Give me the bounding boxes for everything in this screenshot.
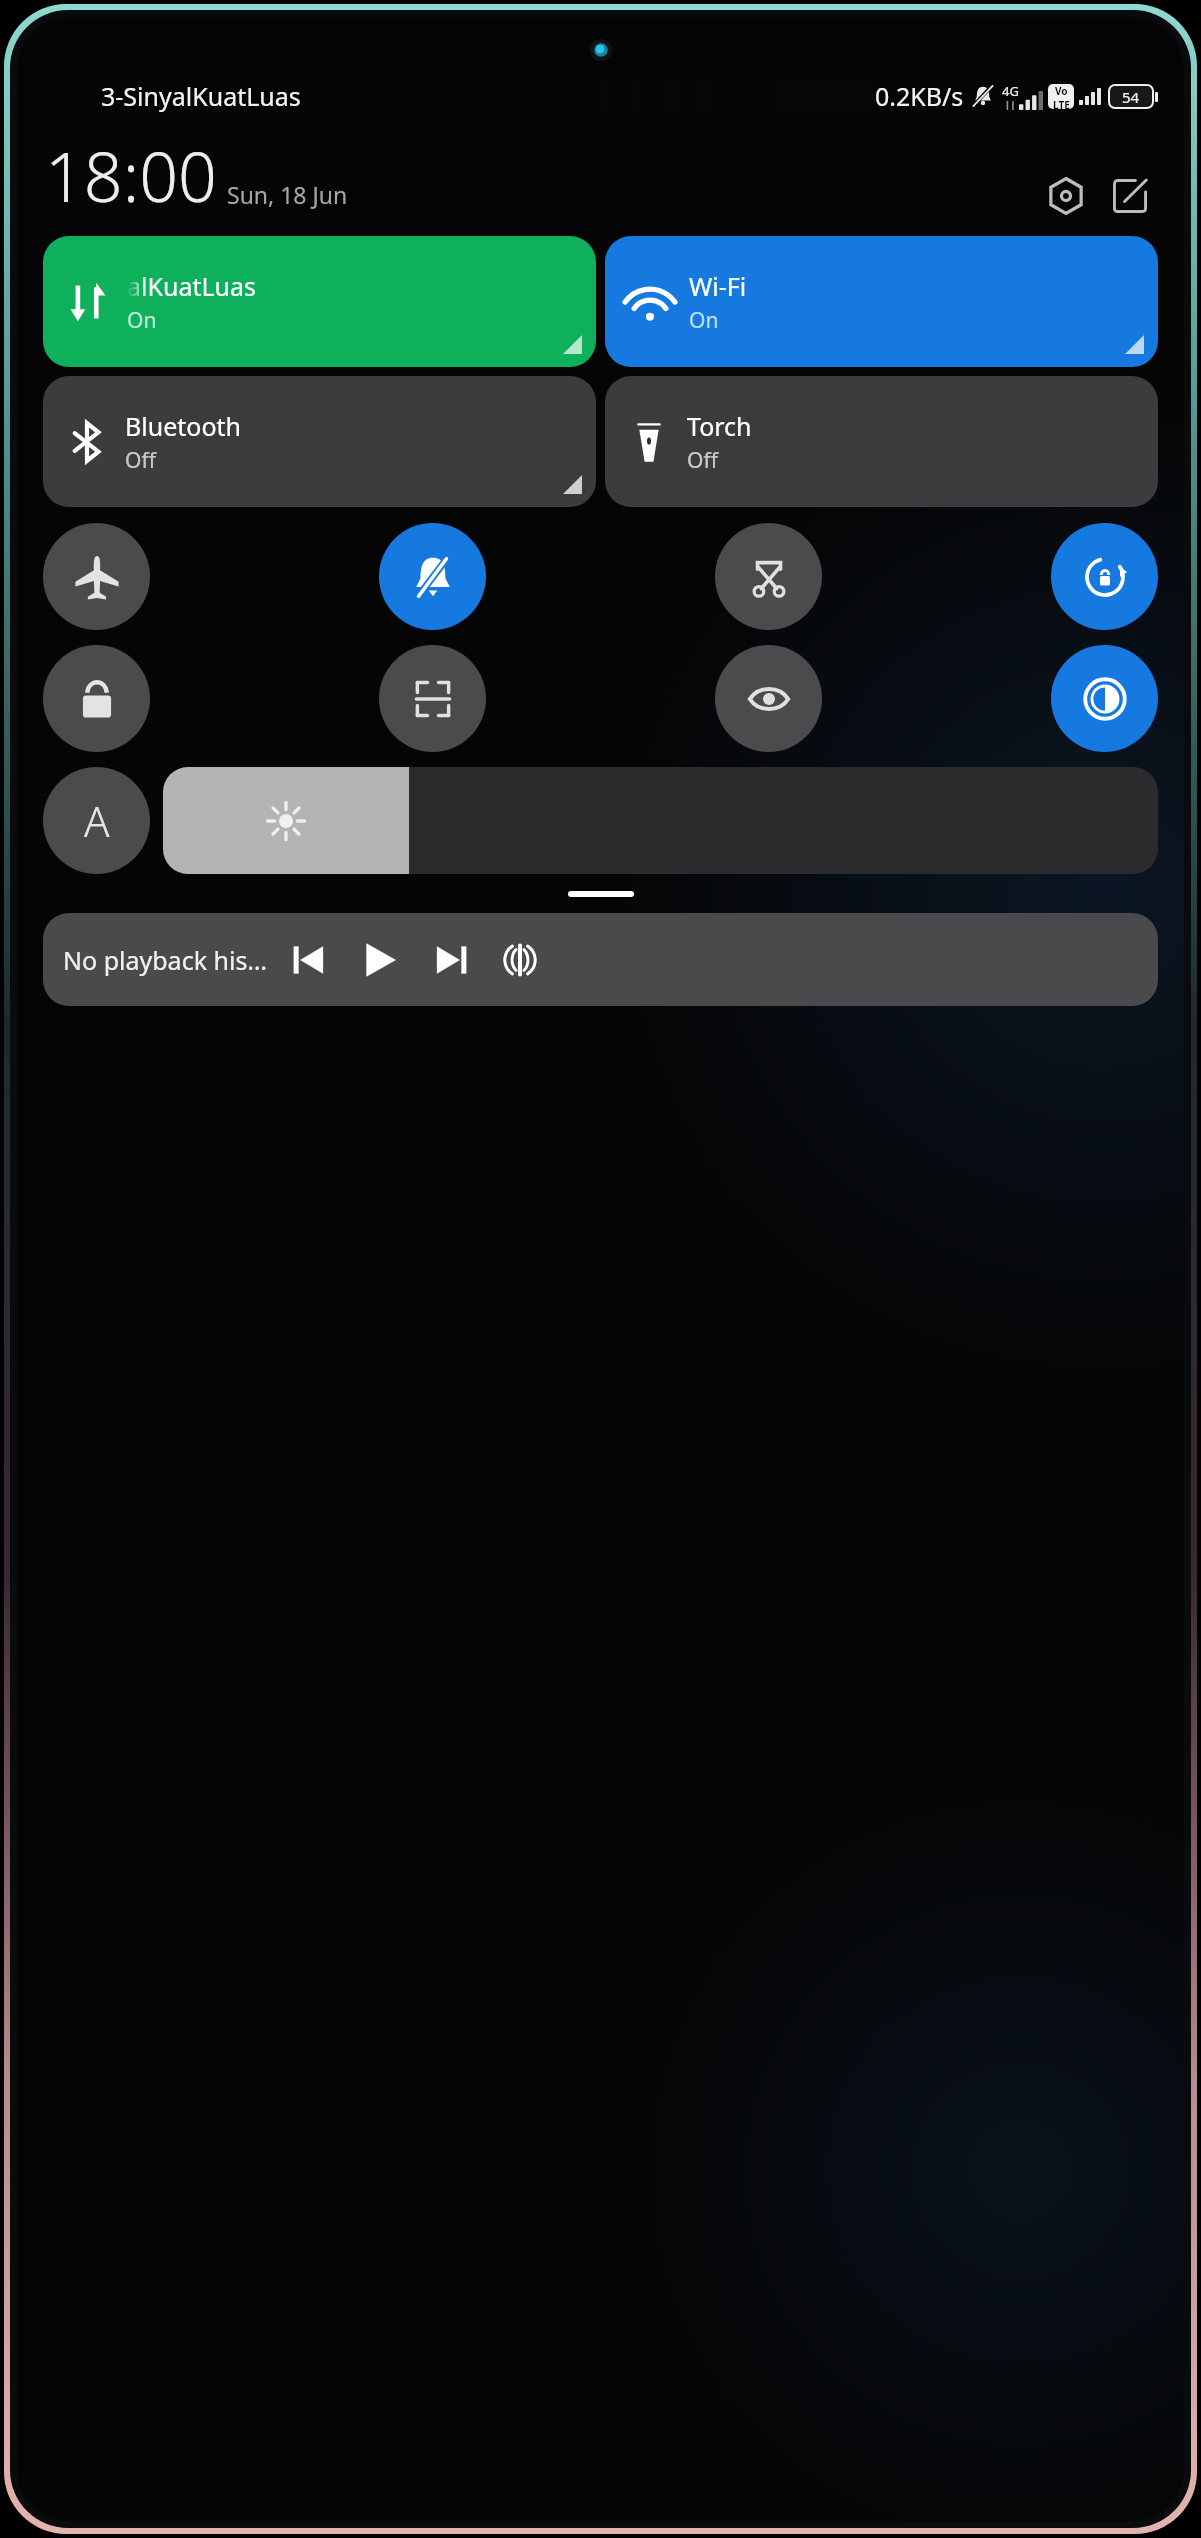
button[interactable]: Auto brightness bbox=[43, 767, 150, 874]
staticText: 54 bbox=[1122, 87, 1140, 107]
button[interactable]: Cast output bbox=[494, 934, 546, 986]
staticText: Torch bbox=[687, 409, 752, 443]
staticText: alKuatLuas bbox=[127, 269, 257, 303]
button[interactable]: Dark mode bbox=[1051, 645, 1158, 752]
staticText: Bluetooth bbox=[125, 409, 242, 443]
staticText: On bbox=[127, 306, 157, 335]
button[interactable]: Previous bbox=[282, 934, 334, 986]
staticText: 4G bbox=[1002, 82, 1019, 100]
button[interactable]: alKuatLuas bbox=[43, 236, 596, 367]
button[interactable]: Screenshot bbox=[715, 523, 822, 630]
button[interactable]: Silent mode bbox=[379, 523, 486, 630]
staticText: On bbox=[689, 306, 719, 335]
button[interactable]: Play bbox=[352, 932, 408, 988]
button[interactable]: Reading mode bbox=[715, 645, 822, 752]
button[interactable]: Scan code bbox=[379, 645, 486, 752]
staticText: Sun, 18 Jun bbox=[227, 179, 348, 210]
button[interactable]: Next bbox=[426, 934, 478, 986]
staticText: 0.2KB/s bbox=[875, 79, 964, 113]
button[interactable]: No playback his… bbox=[43, 913, 1158, 1006]
staticText: 3-SinyalKuatLuas bbox=[101, 79, 301, 113]
staticText: Off bbox=[125, 446, 156, 475]
button[interactable]: Settings bbox=[1040, 170, 1092, 222]
button[interactable]: Airplane mode bbox=[43, 523, 150, 630]
staticText: LTE bbox=[1053, 98, 1070, 109]
staticText: Wi-Fi bbox=[689, 269, 747, 303]
button[interactable]: Torch bbox=[605, 376, 1158, 507]
button[interactable]: Brightness bbox=[163, 767, 1158, 874]
button[interactable]: Bluetooth bbox=[43, 376, 596, 507]
staticText: No playback his… bbox=[63, 943, 268, 977]
staticText: 18:00 bbox=[45, 129, 217, 222]
button[interactable]: Lock screen bbox=[43, 645, 150, 752]
staticText: A bbox=[84, 792, 110, 849]
button[interactable]: Rotation lock bbox=[1051, 523, 1158, 630]
staticText: Off bbox=[687, 446, 718, 475]
staticText: Vo bbox=[1055, 84, 1068, 98]
button[interactable]: Wi-Fi bbox=[605, 236, 1158, 367]
button[interactable]: Edit tiles bbox=[1104, 170, 1156, 222]
